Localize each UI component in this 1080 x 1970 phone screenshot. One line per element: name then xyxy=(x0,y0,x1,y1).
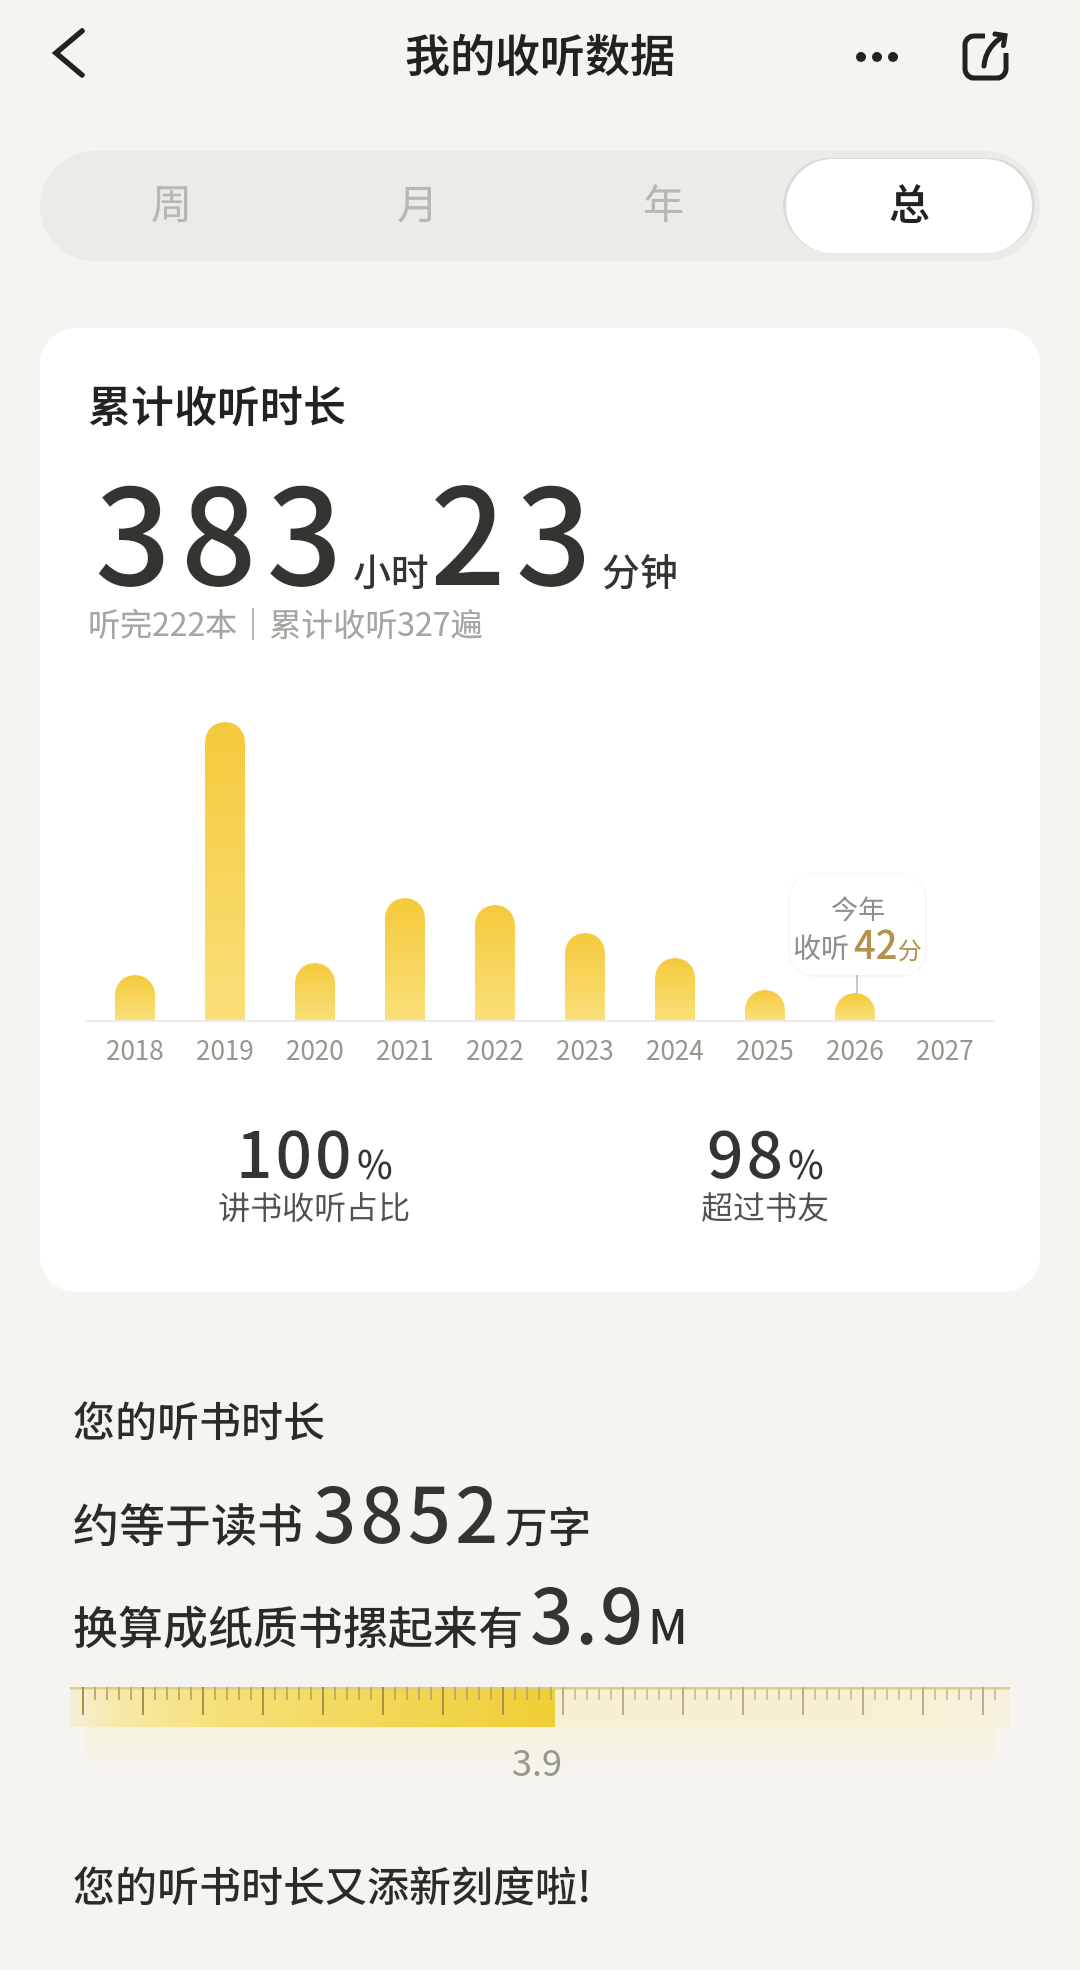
staticText: 年 xyxy=(643,171,684,230)
staticText: 42 xyxy=(854,915,898,970)
staticText: 周 xyxy=(151,171,192,230)
staticText: 383 xyxy=(95,431,353,624)
staticText: M xyxy=(648,1588,688,1658)
staticText: 2026 xyxy=(826,1030,884,1068)
staticText: 2027 xyxy=(916,1030,974,1068)
staticText: 98 xyxy=(707,1104,786,1197)
staticText: 月 xyxy=(397,171,438,230)
staticText: 2022 xyxy=(466,1030,524,1068)
staticText: 我的收听数据 xyxy=(405,20,676,85)
button[interactable]: 年 xyxy=(540,159,786,253)
staticText: 3.9 xyxy=(530,1556,646,1666)
staticText: 23 xyxy=(430,431,602,624)
staticText: 2021 xyxy=(376,1030,434,1068)
staticText: 总 xyxy=(889,171,930,230)
staticText: 100 xyxy=(236,1104,355,1197)
staticText: 万字 xyxy=(505,1493,591,1555)
staticText: 3.9 xyxy=(512,1734,562,1786)
staticText: 超过书友 xyxy=(701,1182,830,1228)
staticText: 分钟 xyxy=(602,542,679,597)
staticText: 您的听书时长 xyxy=(73,1388,326,1449)
staticText: 听完222本｜累计收听327遍 xyxy=(88,599,483,645)
staticText: 3852 xyxy=(313,1455,503,1565)
staticText: 累计收听时长 xyxy=(88,372,346,434)
staticText: % xyxy=(357,1135,393,1190)
staticText: % xyxy=(788,1135,824,1190)
staticText: 2024 xyxy=(646,1030,704,1068)
staticText: 2023 xyxy=(556,1030,614,1068)
staticText: 约等于读书 xyxy=(73,1489,303,1556)
staticText: 2025 xyxy=(736,1030,794,1068)
staticText: 2018 xyxy=(106,1030,164,1068)
button[interactable] xyxy=(952,22,1022,92)
staticText: 分 xyxy=(898,931,922,966)
staticText: 讲书收听占比 xyxy=(218,1182,411,1228)
staticText: 小时 xyxy=(353,542,430,597)
staticText: 2019 xyxy=(196,1030,254,1068)
staticText: 2020 xyxy=(286,1030,344,1068)
staticText: 今年 xyxy=(831,888,885,927)
staticText: 收听 xyxy=(793,926,850,967)
button[interactable] xyxy=(40,18,100,88)
button[interactable]: 周 xyxy=(48,159,294,253)
button[interactable]: 总 xyxy=(786,159,1032,253)
button[interactable]: 月 xyxy=(294,159,540,253)
button[interactable] xyxy=(836,22,918,92)
staticText: 您的听书时长又添新刻度啦! xyxy=(73,1853,592,1914)
staticText: 换算成纸质书摞起来有 xyxy=(73,1592,524,1657)
